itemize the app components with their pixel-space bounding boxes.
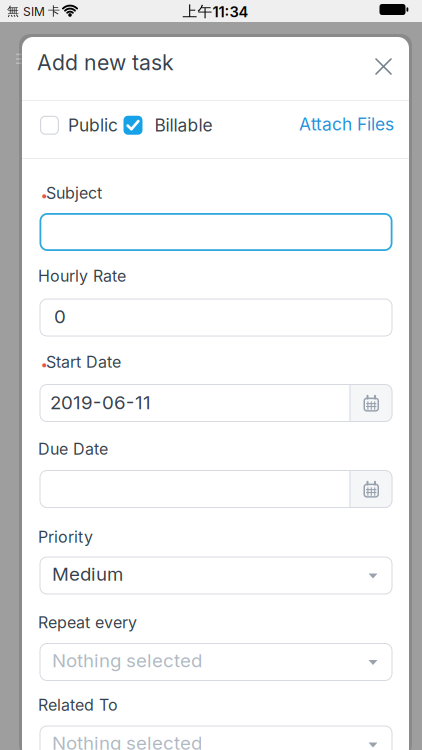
button[interactable]: Nothing selected [39, 725, 392, 750]
staticText: 上午11:34 [182, 2, 248, 20]
button[interactable]: Due Date [39, 470, 349, 508]
button[interactable]: Pick date [349, 470, 392, 508]
button[interactable]: Hourly Rate [39, 298, 392, 336]
button[interactable]: Billable [123, 115, 212, 135]
button[interactable]: Subject [39, 213, 392, 251]
staticText: Priority [38, 527, 93, 546]
staticText: Add new task [37, 50, 174, 75]
staticText: 0 [54, 305, 66, 327]
staticText: Nothing selected [52, 732, 202, 750]
staticText: Attach Files [299, 114, 394, 134]
button[interactable]: Start Date [39, 384, 349, 422]
button[interactable]: Pick date [349, 384, 392, 422]
staticText: 2019-06-11 [50, 391, 151, 413]
staticText: Subject [46, 183, 102, 202]
button[interactable]: Close [368, 51, 399, 82]
staticText: Start Date [46, 352, 121, 371]
staticText: Repeat every [38, 613, 137, 632]
staticText: Public [68, 115, 118, 135]
button[interactable]: Nothing selected [39, 643, 392, 681]
staticText: • [40, 356, 48, 372]
button[interactable]: Attach Files [299, 114, 394, 134]
staticText: • [40, 187, 48, 203]
button[interactable]: Medium [39, 556, 392, 594]
staticText: 無 SIM 卡 [7, 4, 60, 19]
button[interactable]: Public [40, 115, 118, 135]
staticText: Hourly Rate [38, 266, 126, 285]
staticText: Medium [52, 563, 123, 585]
staticText: Billable [154, 115, 212, 135]
staticText: Nothing selected [52, 649, 202, 671]
staticText: Related To [38, 695, 118, 714]
staticText: Due Date [38, 439, 108, 458]
